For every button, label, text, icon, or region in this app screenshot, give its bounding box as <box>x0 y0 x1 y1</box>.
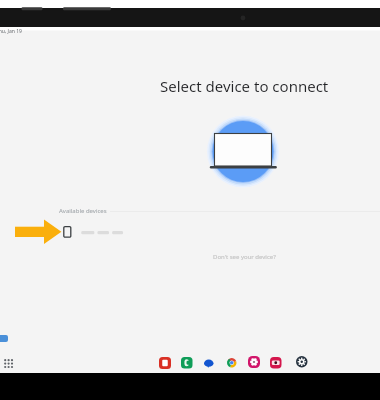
button[interactable]: Settings <box>296 356 308 368</box>
staticText: Available devices <box>59 207 107 215</box>
button[interactable]: All apps <box>4 359 13 368</box>
staticText: Thu, Jan 19 <box>0 28 22 35</box>
staticText: Select device to connect <box>160 76 329 96</box>
button[interactable]: Photos <box>248 356 260 368</box>
button[interactable]: Keep <box>159 357 171 369</box>
button[interactable]: Don't see your device? <box>213 253 276 261</box>
button[interactable]: Chrome <box>227 358 237 368</box>
button[interactable]: Available device <box>56 222 256 242</box>
button[interactable]: Messages <box>204 359 214 369</box>
button[interactable]: YouTube <box>270 357 282 369</box>
button[interactable]: Calendar <box>181 357 193 369</box>
